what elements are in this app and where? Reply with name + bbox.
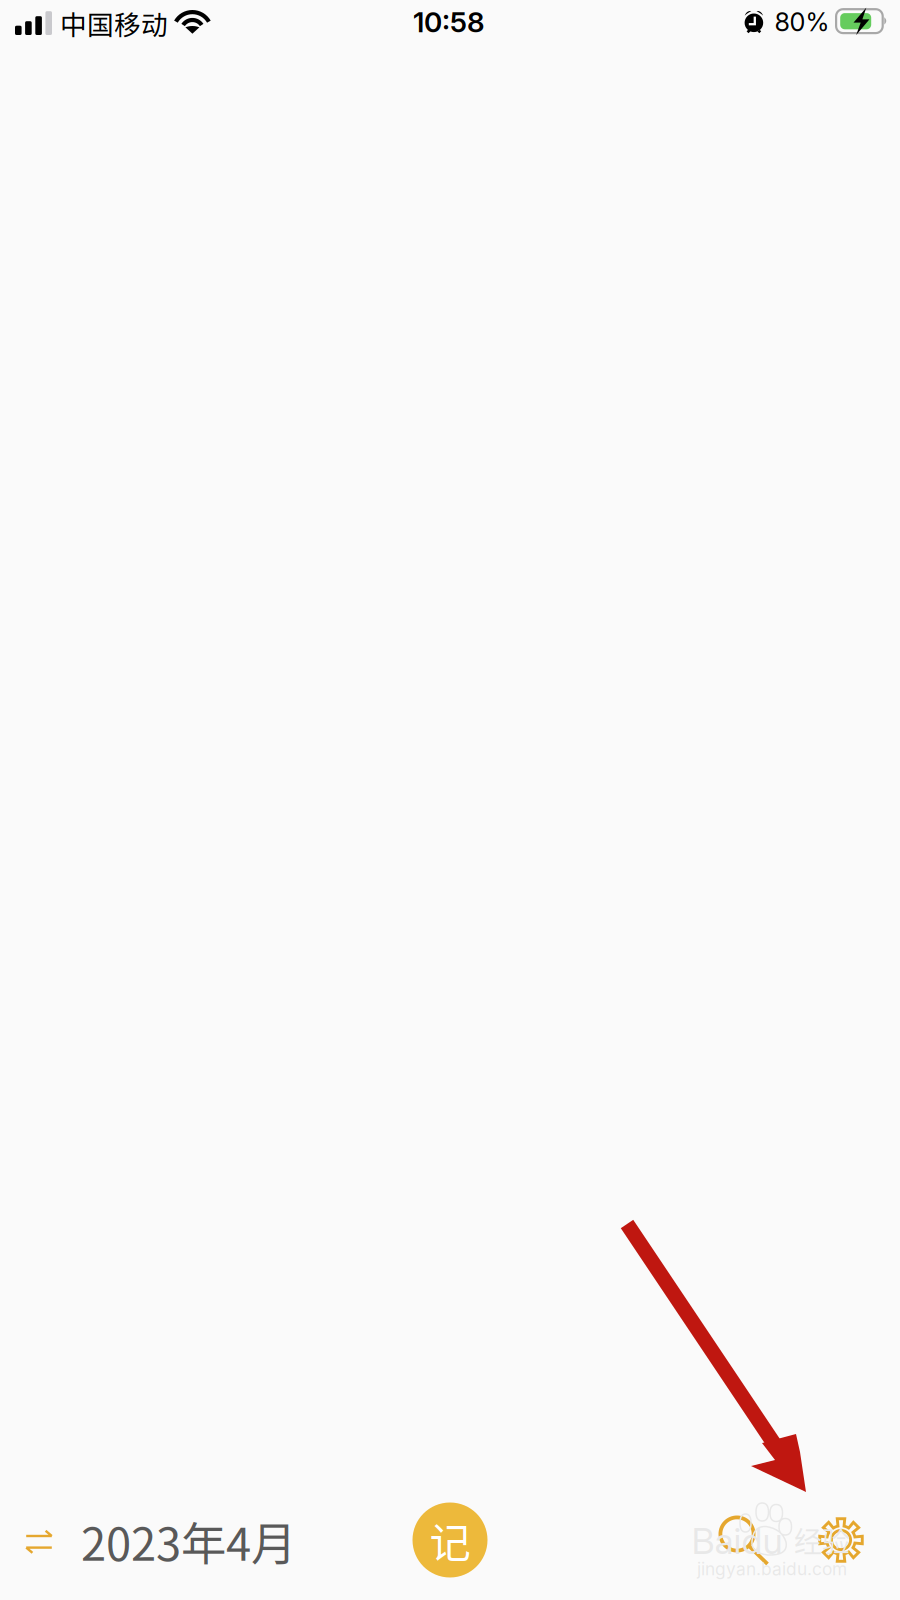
button[interactable]: Search: [698, 1495, 790, 1587]
button[interactable]: 2023年4月: [0, 1493, 417, 1589]
staticText: 记: [429, 1510, 470, 1570]
button[interactable]: Settings: [795, 1494, 887, 1586]
staticText: jingyan.baidu.com: [697, 1558, 847, 1579]
staticText: Baidu: [691, 1519, 782, 1563]
button[interactable]: 记: [402, 1492, 498, 1588]
staticText: 经验: [794, 1520, 850, 1560]
staticText: 中国移动: [60, 4, 168, 42]
staticText: 80%: [774, 7, 829, 37]
staticText: 10:58: [413, 5, 485, 39]
staticText: 2023年4月: [81, 1508, 296, 1574]
